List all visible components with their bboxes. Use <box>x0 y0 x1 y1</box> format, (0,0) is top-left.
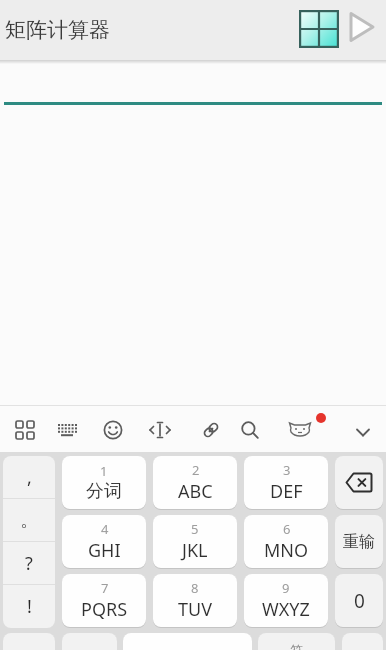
button[interactable] <box>345 414 381 450</box>
staticText: 6 <box>283 520 291 538</box>
staticText: , <box>27 465 32 490</box>
button[interactable] <box>344 7 380 47</box>
staticText: 8 <box>191 579 199 597</box>
staticText: ABC <box>178 479 213 504</box>
staticText: PQRS <box>81 597 128 622</box>
button[interactable] <box>62 633 117 650</box>
staticText: TUV <box>178 597 212 622</box>
button[interactable] <box>296 6 342 52</box>
button[interactable]: 2 <box>153 456 237 509</box>
staticText: WXYZ <box>262 597 310 622</box>
button[interactable] <box>123 633 252 650</box>
staticText: 1 <box>100 462 108 480</box>
staticText: ? <box>25 551 33 576</box>
staticText: 4 <box>101 520 109 538</box>
button[interactable] <box>3 633 55 650</box>
staticText: 0 <box>354 588 365 614</box>
button[interactable] <box>282 412 318 448</box>
staticText: 重输 <box>343 532 375 552</box>
button[interactable] <box>95 412 131 448</box>
button[interactable] <box>342 633 383 650</box>
button[interactable]: 8 <box>153 574 237 627</box>
button[interactable]: 9 <box>244 574 328 627</box>
staticText: 分词 <box>86 480 122 503</box>
button[interactable]: 0 <box>335 574 383 627</box>
staticText: 矩阵计算器 <box>5 17 110 43</box>
staticText: ! <box>27 594 32 619</box>
staticText: 符 <box>290 642 303 650</box>
button[interactable] <box>7 412 43 448</box>
staticText: 3 <box>283 461 291 479</box>
button[interactable]: 5 <box>153 515 237 568</box>
button[interactable]: 7 <box>62 574 146 627</box>
staticText: MNO <box>264 538 309 563</box>
staticText: GHI <box>88 538 121 563</box>
button[interactable] <box>49 412 85 448</box>
staticText: 。 <box>20 509 38 532</box>
staticText: DEF <box>270 479 303 504</box>
button[interactable]: 6 <box>244 515 328 568</box>
button[interactable] <box>193 412 229 448</box>
staticText: JKL <box>182 538 208 563</box>
staticText: 9 <box>282 579 290 597</box>
staticText: 7 <box>101 579 109 597</box>
button[interactable] <box>335 456 383 509</box>
button[interactable]: 3 <box>244 456 328 509</box>
staticText: 2 <box>192 461 200 479</box>
staticText: 5 <box>191 520 199 538</box>
button[interactable]: 符 <box>258 633 335 650</box>
button[interactable]: 1 <box>62 456 146 509</box>
button[interactable] <box>232 412 268 448</box>
button[interactable]: 4 <box>62 515 146 568</box>
button[interactable] <box>142 412 178 448</box>
button[interactable]: 重输 <box>335 515 383 568</box>
